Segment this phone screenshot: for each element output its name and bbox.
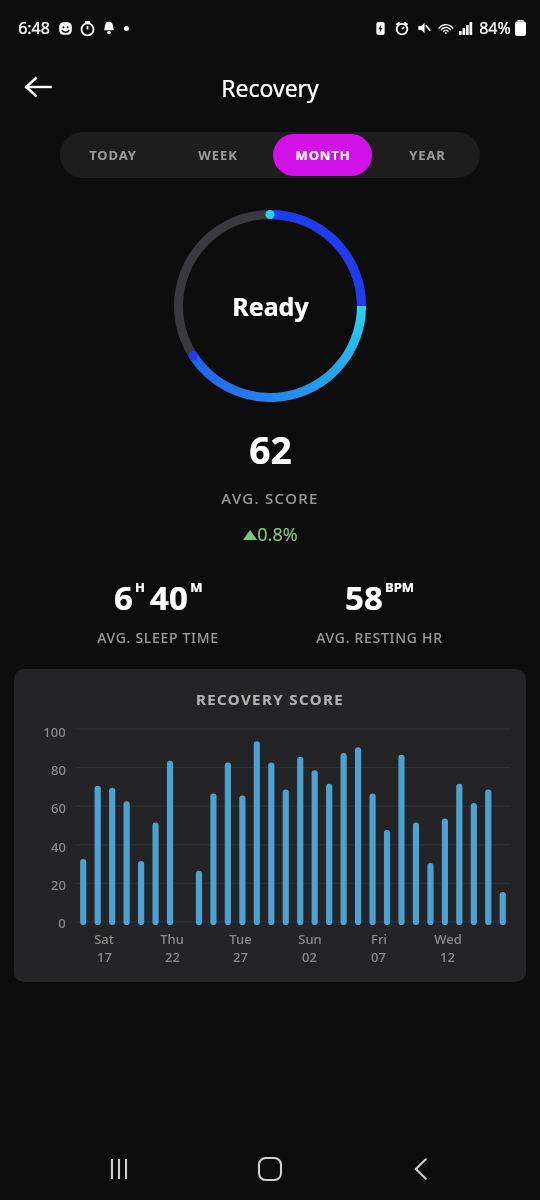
- staticText: Wed: [434, 930, 462, 948]
- staticText: 60: [51, 799, 66, 817]
- staticText: Sat: [94, 930, 114, 948]
- staticText: AVG. SLEEP TIME: [97, 628, 219, 647]
- staticText: 0: [58, 914, 66, 932]
- button[interactable]: MONTH: [273, 134, 372, 176]
- button[interactable]: WEEK: [168, 134, 267, 176]
- staticText: 62: [249, 424, 292, 474]
- button[interactable]: Back: [10, 59, 66, 115]
- staticText: Fri: [371, 930, 387, 948]
- staticText: 100: [43, 723, 66, 741]
- staticText: H: [135, 578, 145, 596]
- staticText: 58: [345, 575, 383, 620]
- staticText: 22: [165, 948, 180, 966]
- staticText: Ready: [232, 289, 309, 323]
- staticText: Tue: [229, 930, 252, 948]
- staticText: Sun: [298, 930, 322, 948]
- staticText: M: [190, 578, 203, 596]
- staticText: BPM: [385, 578, 414, 596]
- staticText: 6: [114, 575, 133, 620]
- staticText: 12: [440, 948, 455, 966]
- staticText: Thu: [160, 930, 184, 948]
- button[interactable]: Recents: [87, 1138, 151, 1200]
- staticText: 40: [51, 838, 66, 856]
- staticText: AVG. RESTING HR: [316, 628, 443, 647]
- staticText: 20: [51, 876, 66, 894]
- staticText: TODAY: [89, 146, 137, 164]
- staticText: RECOVERY SCORE: [196, 689, 344, 709]
- staticText: MONTH: [295, 146, 351, 164]
- staticText: Recovery: [221, 72, 319, 103]
- staticText: AVG. SCORE: [221, 488, 319, 508]
- staticText: 02: [302, 948, 317, 966]
- staticText: 07: [371, 948, 386, 966]
- staticText: YEAR: [409, 146, 446, 164]
- staticText: 6:48: [18, 17, 50, 39]
- button[interactable]: RECOVERY SCORE: [14, 669, 526, 982]
- button[interactable]: Home: [238, 1138, 302, 1200]
- staticText: 40: [150, 575, 188, 620]
- staticText: 0.8%: [257, 522, 298, 547]
- staticText: 27: [233, 948, 248, 966]
- button[interactable]: YEAR: [378, 134, 477, 176]
- staticText: WEEK: [198, 146, 238, 164]
- staticText: 84%: [479, 17, 511, 39]
- staticText: 80: [51, 761, 66, 779]
- button[interactable]: Back: [389, 1138, 453, 1200]
- button[interactable]: TODAY: [63, 134, 162, 176]
- staticText: 17: [97, 948, 112, 966]
